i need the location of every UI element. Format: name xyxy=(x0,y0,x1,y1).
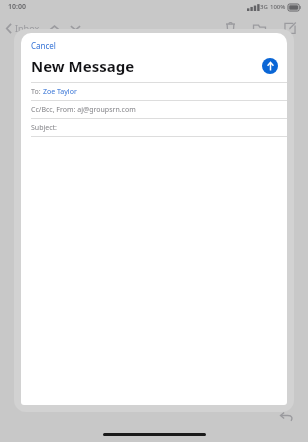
button[interactable]: Reply xyxy=(277,407,296,424)
staticText: Subject: xyxy=(31,123,57,133)
button[interactable]: Compose xyxy=(278,16,302,40)
staticText: 100% xyxy=(270,3,286,11)
button[interactable]: Cc/Bcc, From: aj@groupsrn.com xyxy=(21,101,287,118)
staticText: Cc/Bcc, From: aj@groupsrn.com xyxy=(31,105,136,115)
button[interactable]: Delete xyxy=(220,16,241,40)
button[interactable]: Send xyxy=(262,58,278,74)
button[interactable]: Subject: xyxy=(21,119,287,136)
staticText: Cancel xyxy=(31,40,56,51)
button[interactable]: Next message xyxy=(65,20,86,36)
button[interactable]: Cancel xyxy=(21,33,66,54)
button[interactable]: Inbox xyxy=(0,19,44,37)
staticText: To: xyxy=(31,87,43,97)
staticText: New Message xyxy=(31,56,135,76)
staticText: 3G xyxy=(260,3,268,11)
staticText: 10:00 xyxy=(8,2,26,12)
button[interactable]: Move to folder xyxy=(247,17,272,40)
button[interactable]: To: xyxy=(21,83,287,100)
staticText: Inbox xyxy=(15,22,40,34)
button[interactable]: Previous message xyxy=(44,20,65,36)
staticText: Zoe Taylor xyxy=(43,87,77,97)
